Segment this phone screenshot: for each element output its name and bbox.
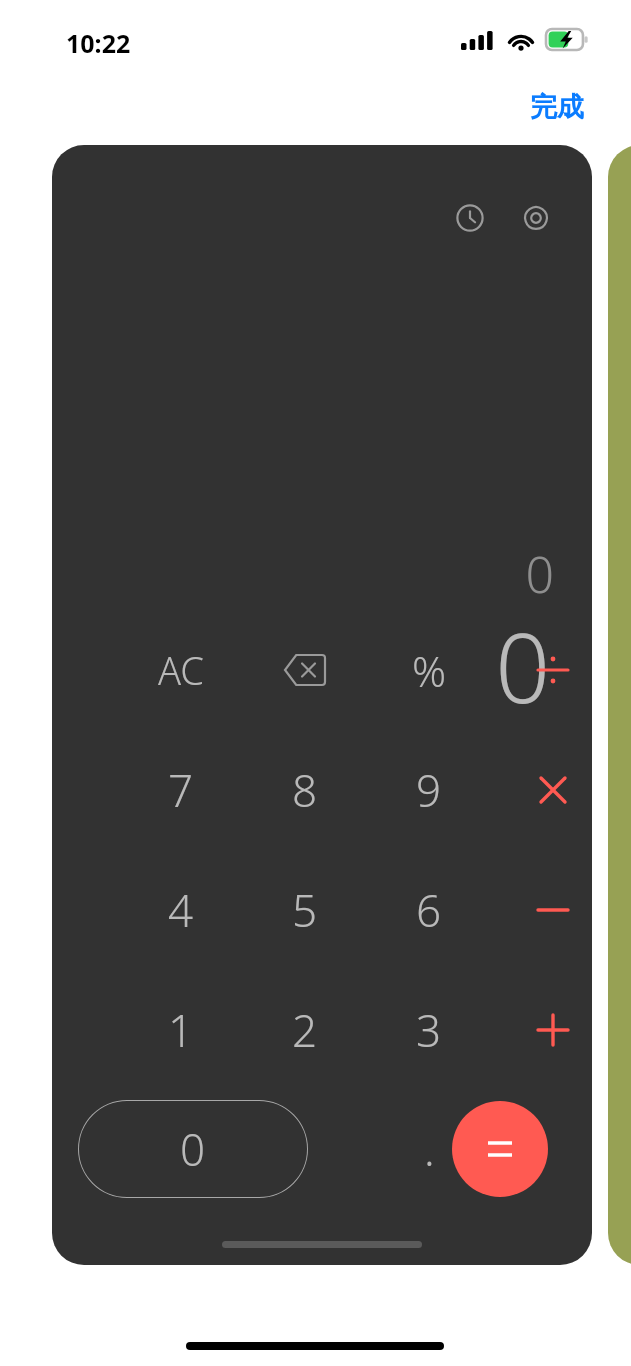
staticText: 8 bbox=[292, 760, 318, 820]
button[interactable]: Scientific mode bbox=[514, 196, 558, 240]
staticText: 4 bbox=[168, 880, 194, 940]
staticText: 9 bbox=[416, 760, 442, 820]
button[interactable]: 7 bbox=[131, 740, 231, 840]
staticText: 7 bbox=[168, 760, 194, 820]
button[interactable]: 0 bbox=[78, 1100, 308, 1198]
button[interactable]: 5 bbox=[255, 860, 355, 960]
button[interactable]: Equals bbox=[452, 1101, 548, 1197]
staticText: % bbox=[412, 642, 447, 699]
button[interactable]: 2 bbox=[255, 980, 355, 1080]
button[interactable]: Divide bbox=[503, 620, 592, 720]
button[interactable]: 1 bbox=[131, 980, 231, 1080]
button[interactable]: Minus bbox=[503, 860, 592, 960]
button[interactable]: Multiply bbox=[503, 740, 592, 840]
staticText: 0 bbox=[525, 540, 554, 596]
staticText: 0 bbox=[495, 600, 550, 720]
button[interactable]: 8 bbox=[255, 740, 355, 840]
button[interactable]: 4 bbox=[131, 860, 231, 960]
staticText: 0 bbox=[180, 1119, 206, 1179]
staticText: 2 bbox=[292, 1000, 318, 1060]
staticText: 3 bbox=[416, 1000, 442, 1060]
staticText: 10:22 bbox=[66, 26, 131, 60]
button[interactable]: 6 bbox=[379, 860, 479, 960]
button[interactable]: Decimal point bbox=[379, 1099, 479, 1199]
button[interactable]: 3 bbox=[379, 980, 479, 1080]
button[interactable]: Backspace bbox=[255, 620, 355, 720]
button[interactable]: History bbox=[448, 196, 492, 240]
staticText: 5 bbox=[292, 880, 318, 940]
staticText: 6 bbox=[416, 880, 442, 940]
staticText: 1 bbox=[168, 1000, 194, 1060]
staticText: AC bbox=[158, 644, 205, 696]
button[interactable] bbox=[608, 145, 631, 1265]
button[interactable]: 9 bbox=[379, 740, 479, 840]
button[interactable]: Clear all bbox=[131, 620, 231, 720]
staticText: . bbox=[424, 1119, 435, 1179]
button[interactable]: 完成 bbox=[524, 86, 590, 128]
button[interactable]: Plus bbox=[503, 980, 592, 1080]
staticText: 完成 bbox=[530, 90, 584, 124]
button[interactable]: Percent bbox=[379, 620, 479, 720]
